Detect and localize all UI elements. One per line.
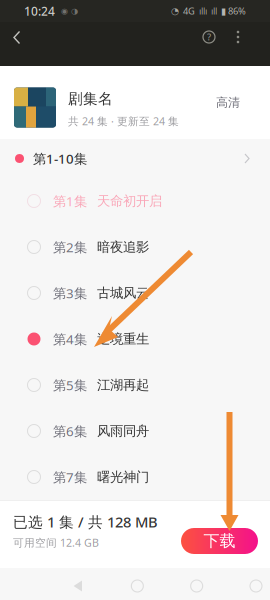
staticText: 第5集 [53,376,87,394]
button[interactable]: 第4集 [0,316,270,362]
button[interactable]: 下载 [181,528,258,554]
staticText: 第3集 [53,284,87,302]
staticText: 第1-10集 [33,150,87,167]
staticText: 暗夜追影 [97,239,149,255]
staticText: 第6集 [53,422,87,440]
staticText: 逆境重生 [97,331,149,347]
staticText: 曙光神门 [97,469,149,485]
staticText: 已选 1 集 / 共 128 MB [13,512,158,531]
staticText: 天命初开启 [97,193,162,209]
staticText: 剧集名 [68,90,113,108]
staticText: 10:24 [24,3,55,19]
staticText: 第2集 [53,238,87,256]
button[interactable]: 第3集 [0,270,270,316]
staticText: 第4集 [53,330,87,348]
staticText: ◔ [171,6,179,16]
button[interactable]: Assistant [242,572,270,600]
staticText: 第7集 [53,468,87,486]
button[interactable]: More [223,22,270,66]
staticText: 共 24 集 · 更新至 24 集 [68,114,179,128]
staticText: 古城风云 [97,285,149,301]
staticText: 4G [179,5,195,17]
staticText: 可用空间 12.4 GB [13,535,99,550]
button[interactable]: 第6集 [0,408,270,454]
button[interactable]: 第1-10集 [0,139,270,178]
staticText: 高清 [216,95,240,110]
button[interactable]: Help [195,22,223,66]
button[interactable]: 第1集 [0,178,270,224]
button[interactable]: 高清 [208,91,248,114]
button[interactable]: 第5集 [0,362,270,408]
button[interactable]: 第7集 [0,454,270,500]
staticText: 第1集 [53,192,87,210]
staticText: 江湖再起 [97,377,149,393]
staticText: ıllı ıll [195,5,221,17]
staticText: 风雨同舟 [97,423,149,439]
button[interactable]: Back [0,22,34,66]
staticText: ◉ ◑ [55,6,78,16]
button[interactable]: Back [64,572,92,600]
button[interactable]: Home [123,572,151,600]
staticText: 下载 [203,531,235,551]
button[interactable]: Recents [183,572,211,600]
staticText: ▮ 86% [221,5,246,17]
button[interactable]: 第2集 [0,224,270,270]
staticText: ? [207,31,211,43]
